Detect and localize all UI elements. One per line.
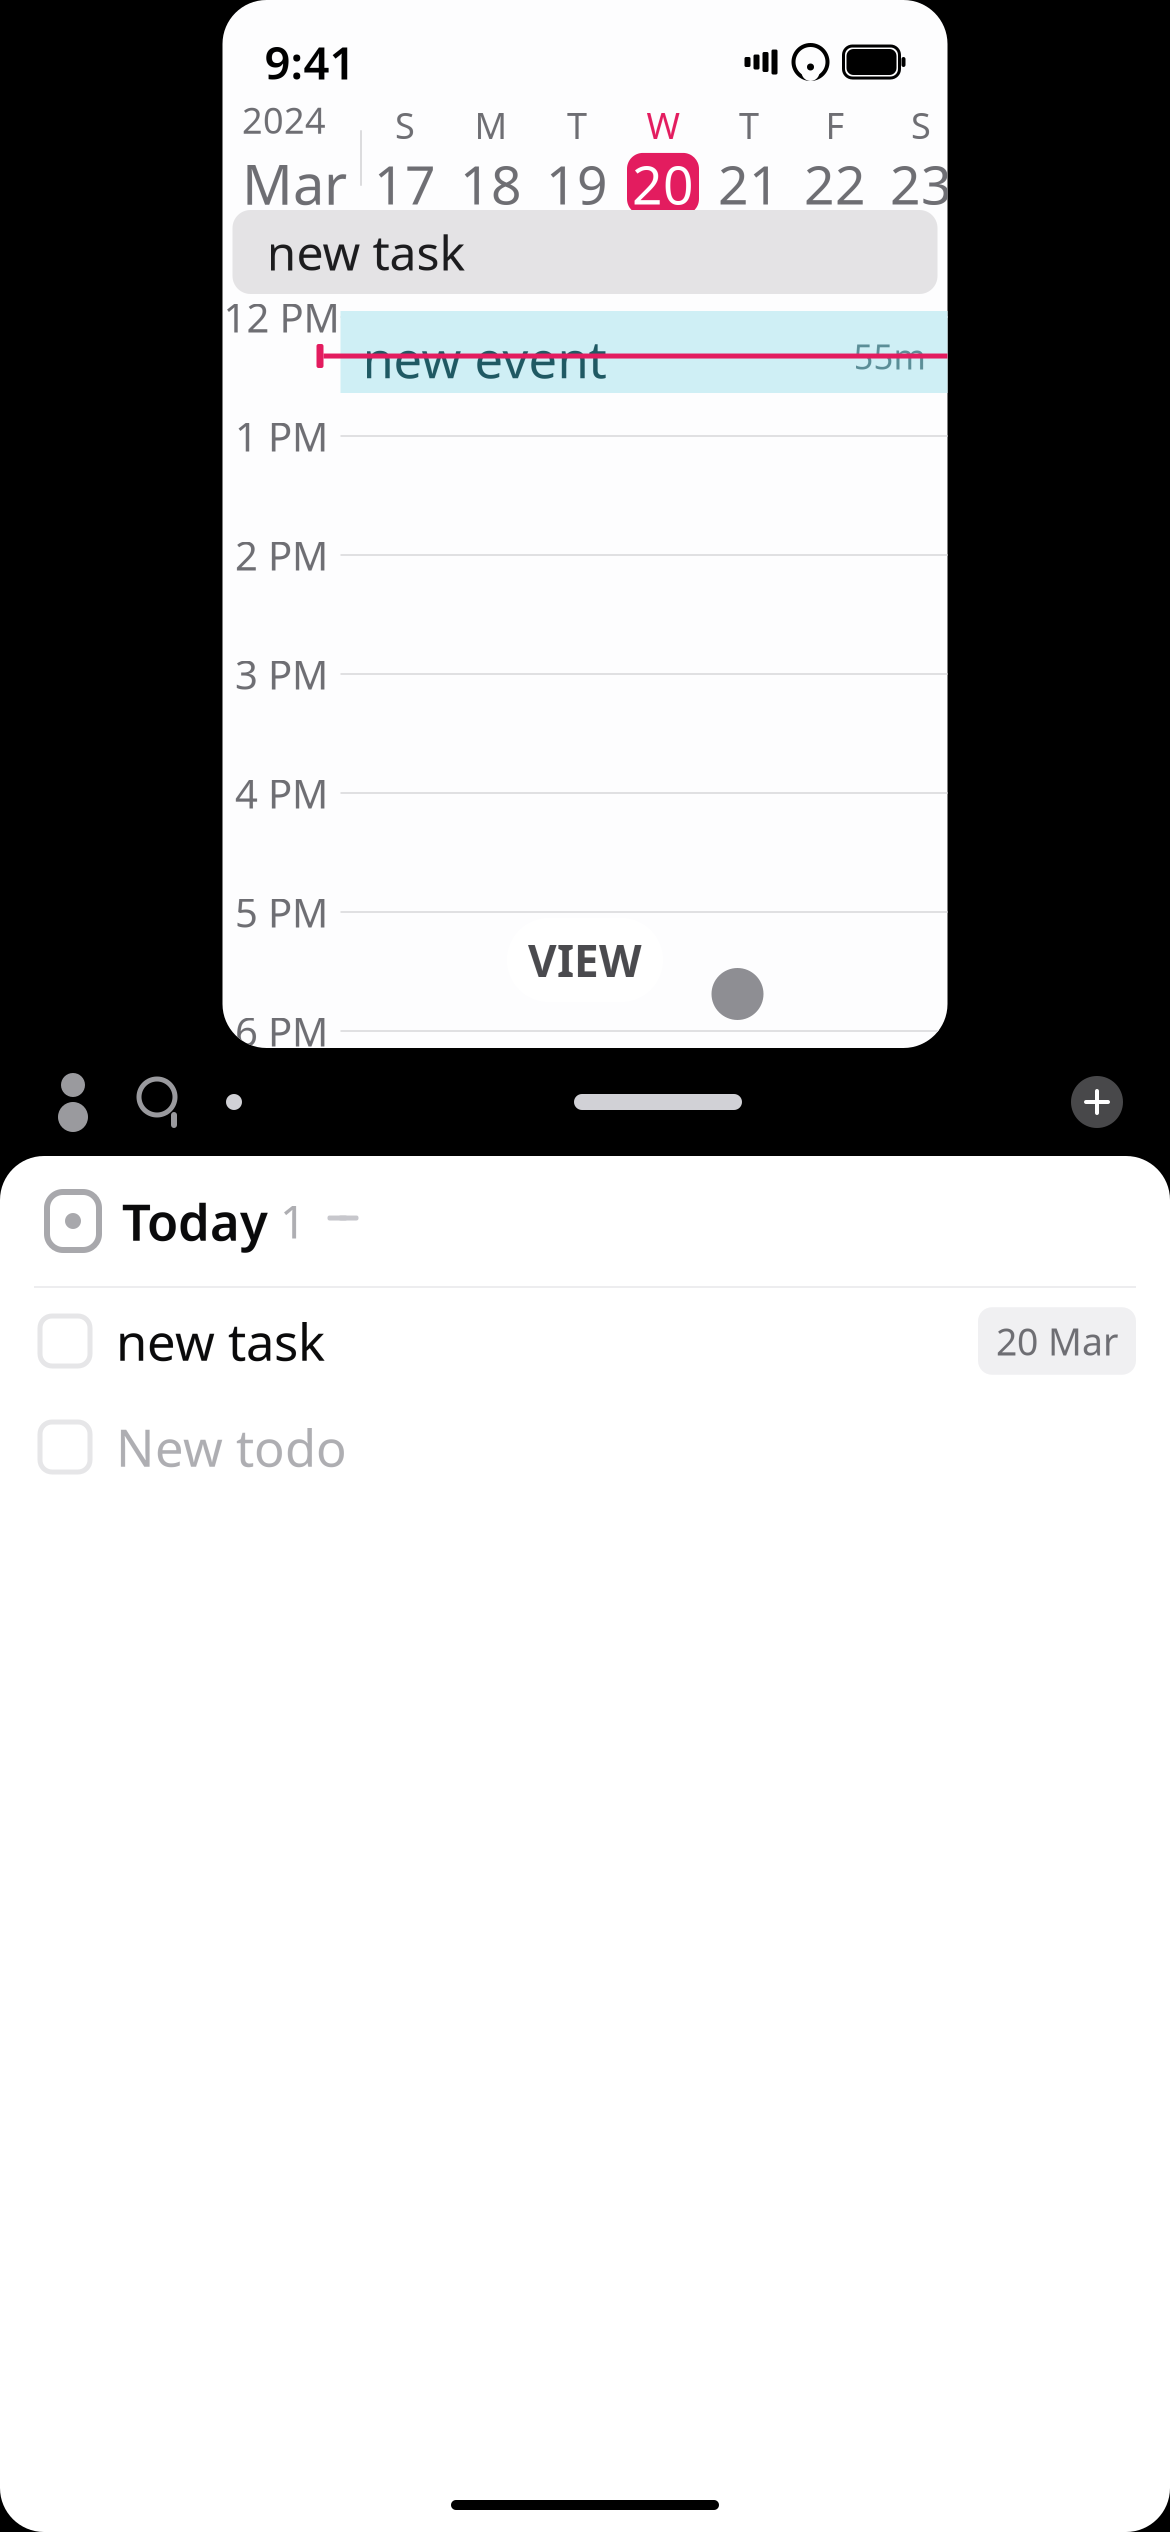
- staticText: VIEW: [528, 931, 642, 989]
- staticText: 6 PM: [235, 1004, 328, 1057]
- button[interactable]: Search: [118, 1067, 204, 1137]
- staticText: S: [395, 101, 415, 149]
- button[interactable]: Add: [1052, 1067, 1142, 1137]
- staticText: Mar: [242, 146, 347, 220]
- button[interactable]: F: [792, 101, 878, 215]
- staticText: 20: [632, 148, 694, 219]
- button[interactable]: Profile: [28, 1067, 118, 1137]
- staticText: 23: [890, 148, 952, 219]
- staticText: 4 PM: [235, 766, 328, 819]
- staticText: 19: [546, 148, 608, 219]
- button[interactable]: M: [448, 101, 534, 215]
- staticText: new task: [266, 220, 465, 284]
- staticText: 17: [374, 148, 436, 219]
- staticText: T: [739, 101, 759, 149]
- button[interactable]: new task: [232, 210, 937, 294]
- staticText: 1 PM: [235, 409, 328, 462]
- button[interactable]: S: [362, 101, 448, 215]
- button[interactable]: New todo: [0, 1394, 1170, 1500]
- staticText: 55m: [853, 333, 925, 379]
- button[interactable]: W: [620, 101, 706, 215]
- staticText: 21: [718, 148, 780, 219]
- staticText: M: [474, 101, 507, 149]
- staticText: 20 Mar: [996, 1316, 1118, 1366]
- staticText: 22: [804, 148, 866, 219]
- staticText: W: [646, 101, 679, 149]
- button[interactable]: More: [204, 1067, 264, 1137]
- staticText: 1: [268, 1191, 306, 1251]
- button[interactable]: new event: [340, 311, 947, 393]
- staticText: 5 PM: [235, 885, 328, 938]
- button[interactable]: S: [878, 101, 964, 215]
- button[interactable]: VIEW: [507, 918, 663, 1002]
- staticText: 12 PM: [223, 290, 339, 343]
- staticText: 2 PM: [235, 528, 328, 581]
- staticText: 3 PM: [235, 647, 328, 700]
- staticText: 9:41: [264, 32, 355, 92]
- button[interactable]: Today: [0, 1156, 1170, 1286]
- staticText: F: [825, 101, 844, 149]
- staticText: Today: [122, 1187, 268, 1255]
- staticText: new event: [362, 325, 606, 392]
- button[interactable]: new task: [0, 1288, 1170, 1394]
- staticText: T: [567, 101, 587, 149]
- staticText: 2024: [242, 96, 326, 144]
- staticText: 18: [460, 148, 522, 219]
- staticText: new task: [116, 1307, 325, 1375]
- staticText: S: [911, 101, 931, 149]
- button[interactable]: T: [534, 101, 620, 215]
- staticText: New todo: [116, 1413, 347, 1481]
- button[interactable]: T: [706, 101, 792, 215]
